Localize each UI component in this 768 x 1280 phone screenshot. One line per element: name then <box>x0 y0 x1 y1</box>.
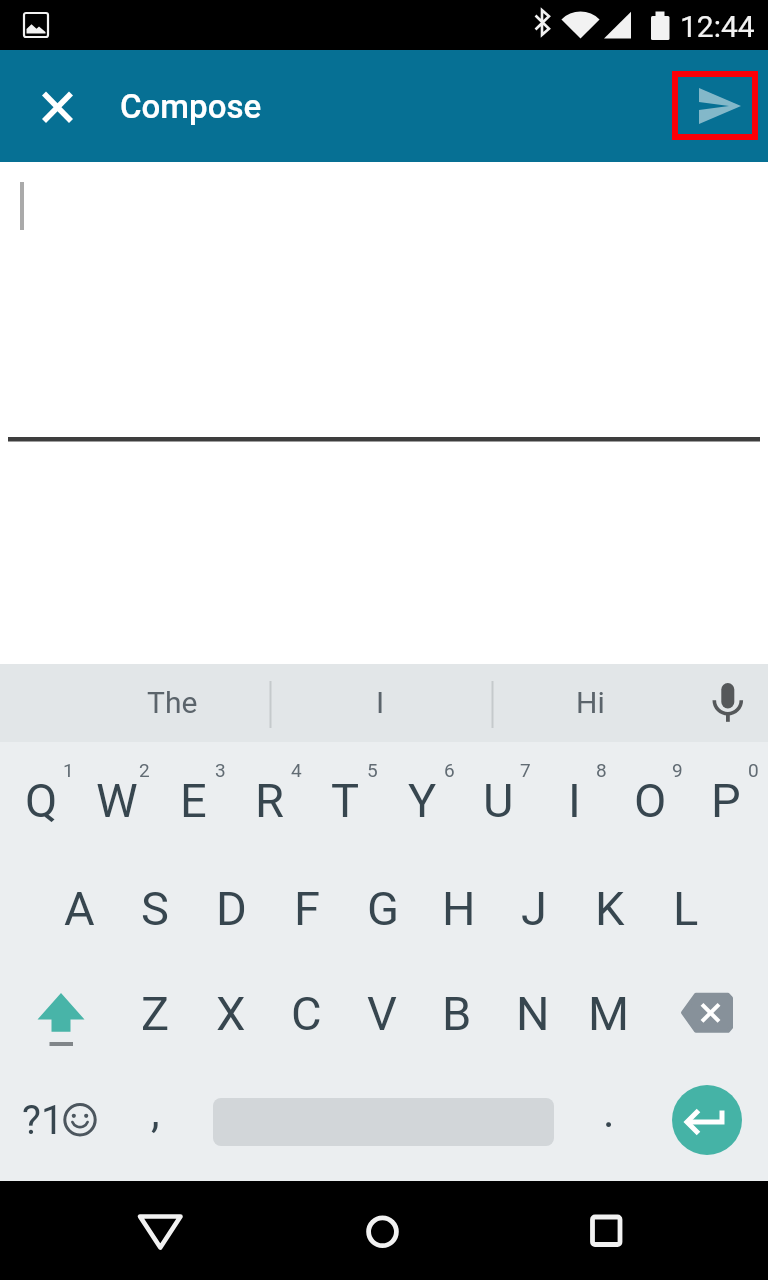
staticText: A <box>64 881 95 936</box>
button[interactable]: I <box>537 752 611 848</box>
button[interactable]: V <box>345 965 419 1061</box>
button[interactable]: X <box>194 965 268 1061</box>
button[interactable]: P <box>689 752 763 848</box>
staticText: Z <box>141 986 170 1041</box>
staticText: E <box>180 773 207 828</box>
staticText: O <box>634 773 667 828</box>
staticText: H <box>442 881 476 936</box>
staticText: J <box>521 881 547 936</box>
button[interactable]: A <box>42 860 116 956</box>
staticText: W <box>96 773 138 828</box>
staticText: T <box>331 773 360 828</box>
staticText: Hi <box>576 685 605 720</box>
button[interactable]: ?1 <box>13 1085 73 1155</box>
button[interactable]: , <box>130 1077 180 1147</box>
staticText: I <box>568 773 581 828</box>
staticText: . <box>603 1086 615 1138</box>
button[interactable]: Y <box>385 752 459 848</box>
staticText: F <box>294 881 320 936</box>
staticText: , <box>151 1086 160 1138</box>
button[interactable] <box>669 978 745 1048</box>
staticText: C <box>291 986 322 1041</box>
staticText: 4 <box>291 759 302 781</box>
staticText: Compose <box>120 87 262 126</box>
button[interactable]: S <box>118 860 192 956</box>
button[interactable]: U <box>461 752 535 848</box>
staticText: 7 <box>520 759 531 781</box>
button[interactable]: The <box>107 667 237 737</box>
staticText: 2 <box>139 759 150 781</box>
staticText: The <box>147 685 198 720</box>
staticText: N <box>516 986 550 1041</box>
staticText: 5 <box>367 759 378 781</box>
button[interactable]: M <box>572 965 646 1061</box>
button[interactable]: L <box>649 860 723 956</box>
staticText: D <box>216 881 247 936</box>
staticText: P <box>711 773 741 828</box>
button[interactable]: R <box>232 752 306 848</box>
button[interactable]: F <box>270 860 344 956</box>
staticText: G <box>367 881 400 936</box>
staticText: 6 <box>444 759 455 781</box>
button[interactable] <box>30 80 86 136</box>
staticText: B <box>442 986 472 1041</box>
button[interactable]: . <box>584 1077 634 1147</box>
button[interactable]: B <box>420 965 494 1061</box>
staticText: I <box>376 685 385 720</box>
button[interactable]: J <box>497 860 571 956</box>
button[interactable]: K <box>573 860 647 956</box>
staticText: Q <box>25 773 58 828</box>
button[interactable] <box>568 1192 648 1270</box>
button[interactable] <box>120 1192 200 1270</box>
staticText: X <box>216 986 246 1041</box>
staticText: K <box>595 881 625 936</box>
button[interactable]: D <box>194 860 268 956</box>
staticText: Y <box>408 773 437 828</box>
button[interactable] <box>344 1192 424 1270</box>
button[interactable]: Q <box>4 752 78 848</box>
staticText: U <box>483 773 514 828</box>
button[interactable]: C <box>269 965 343 1061</box>
staticText: ?1 <box>22 1097 64 1144</box>
staticText: V <box>367 986 397 1041</box>
button[interactable]: I <box>310 667 450 737</box>
button[interactable] <box>695 668 761 738</box>
staticText: R <box>255 773 284 828</box>
staticText: 3 <box>215 759 226 781</box>
button[interactable]: T <box>308 752 382 848</box>
staticText: M <box>588 986 630 1041</box>
button[interactable]: H <box>422 860 496 956</box>
staticText: 9 <box>672 759 683 781</box>
button[interactable] <box>24 978 100 1048</box>
button[interactable]: Z <box>118 965 192 1061</box>
button[interactable] <box>672 1085 742 1155</box>
button[interactable]: E <box>156 752 230 848</box>
staticText: S <box>141 881 169 936</box>
staticText: 8 <box>596 759 607 781</box>
button[interactable]: G <box>346 860 420 956</box>
button[interactable] <box>672 71 758 140</box>
button[interactable]: Hi <box>525 667 655 737</box>
staticText: L <box>673 881 699 936</box>
staticText: 0 <box>748 759 759 781</box>
button[interactable]: W <box>80 752 154 848</box>
button[interactable]: N <box>496 965 570 1061</box>
staticText: 12:44 <box>680 9 755 44</box>
staticText: 1 <box>63 759 74 781</box>
button[interactable]: O <box>613 752 687 848</box>
